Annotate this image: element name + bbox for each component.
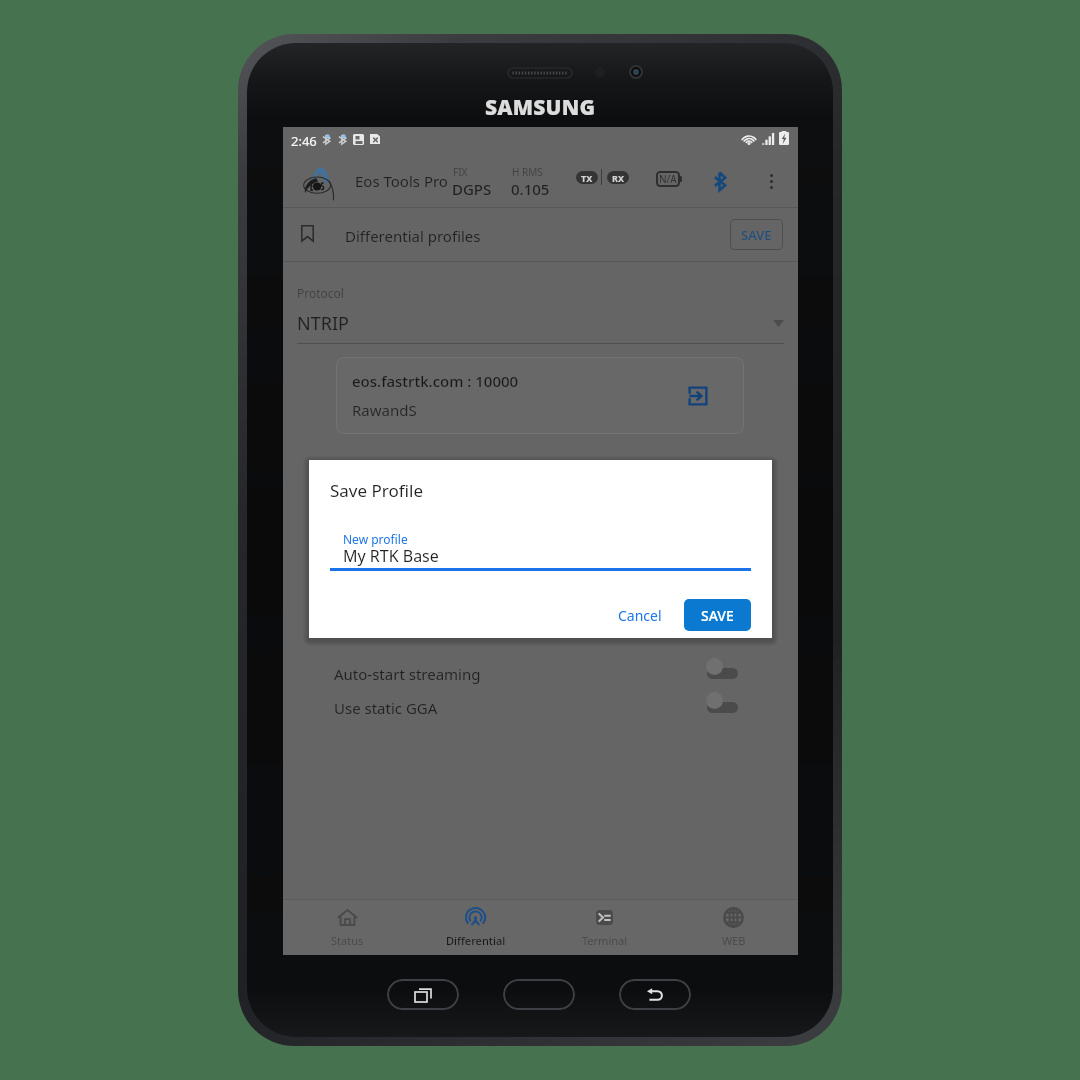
staticText: Terminal [582, 933, 628, 948]
staticText: RawandS [352, 400, 417, 420]
staticText: 2:46 [291, 132, 317, 150]
staticText: Differential profiles [345, 226, 481, 246]
staticText: H RMS [512, 165, 543, 179]
button[interactable]: eos.fastrtk.com : 10000 [336, 357, 744, 434]
button[interactable]: More options [757, 167, 785, 195]
staticText: Eos Tools Pro [355, 171, 448, 191]
staticText: New profile [343, 531, 408, 547]
staticText: TX [581, 172, 593, 184]
button[interactable]: SAVE [730, 219, 783, 250]
staticText: DGPS [452, 179, 492, 199]
staticText: My RTK Base [343, 545, 439, 567]
staticText: Cancel [618, 606, 662, 625]
staticText: Auto-start streaming [334, 664, 481, 684]
button[interactable]: Differential profiles [283, 208, 798, 261]
button[interactable]: Back [619, 979, 691, 1010]
button[interactable]: WEB [669, 900, 798, 955]
staticText: Protocol [297, 285, 344, 301]
button[interactable]: Differential [411, 900, 540, 955]
button[interactable]: Auto-start streaming [283, 656, 798, 690]
button[interactable]: Protocol [297, 285, 784, 344]
staticText: WEB [722, 933, 746, 948]
staticText: SAMSUNG [485, 93, 596, 122]
staticText: SAVE [741, 226, 772, 244]
button[interactable]: Terminal [540, 900, 669, 955]
button[interactable]: Home [503, 979, 575, 1010]
button[interactable]: Status [283, 900, 411, 955]
staticText: SAVE [701, 606, 734, 625]
staticText: FIX [453, 165, 468, 179]
staticText: RX [612, 172, 624, 184]
button[interactable]: Recents [387, 979, 459, 1010]
staticText: Use static GGA [334, 698, 438, 718]
staticText: Save Profile [330, 479, 423, 502]
staticText: N/A [659, 172, 677, 186]
staticText: eos.fastrtk.com : 10000 [352, 371, 519, 391]
button[interactable]: Use static GGA [283, 690, 798, 724]
button[interactable]: SAVE [684, 599, 751, 631]
staticText: Status [331, 933, 364, 948]
staticText: Differential [446, 933, 506, 948]
button[interactable]: Cancel [604, 599, 676, 631]
staticText: NTRIP [297, 311, 349, 336]
staticText: 0.105 [511, 179, 550, 199]
button[interactable]: Bluetooth [706, 167, 734, 195]
